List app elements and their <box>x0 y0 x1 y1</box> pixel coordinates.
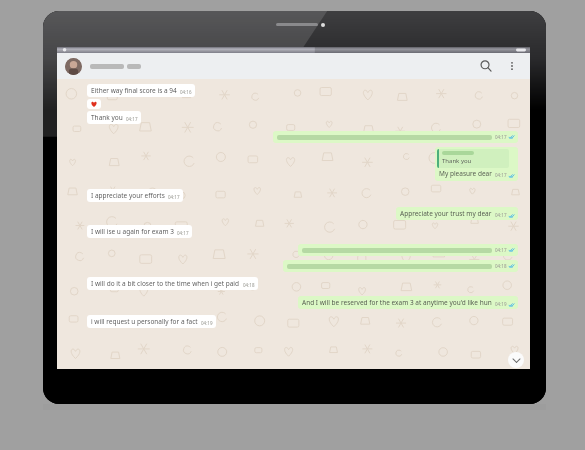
button[interactable]: 04:17 <box>298 244 518 256</box>
staticText: 04:17 <box>495 212 507 218</box>
staticText: 04:17 <box>495 172 507 178</box>
button[interactable]: Thank you <box>435 147 518 181</box>
staticText: 04:16 <box>180 89 192 95</box>
staticText: Thank you <box>442 157 472 165</box>
staticText: I will do it a bit closer to the time wh… <box>91 279 240 288</box>
button[interactable]: Scroll to bottom <box>508 352 524 368</box>
staticText: 04:19 <box>201 320 213 326</box>
button[interactable]: I will do it a bit closer to the time wh… <box>87 277 258 290</box>
staticText: And I will be reserved for the exam 3 at… <box>302 298 492 307</box>
button[interactable]: i will request u personally for a fact <box>87 315 216 328</box>
staticText: 04:17 <box>168 194 180 200</box>
staticText: 04:17 <box>495 247 507 253</box>
staticText: Appreciate your trust my dear <box>400 209 492 218</box>
staticText: Either way final score is a 94 <box>91 86 177 95</box>
button[interactable]: And I will be reserved for the exam 3 at… <box>298 296 518 309</box>
staticText: Thank you <box>91 113 123 122</box>
button[interactable]: Contact photo <box>65 58 82 75</box>
button[interactable]: Either way final score is a 94 <box>87 84 195 97</box>
button[interactable] <box>90 64 474 69</box>
staticText: 04:17 <box>495 134 507 140</box>
button[interactable]: 04:18 <box>283 260 518 272</box>
button[interactable]: I appreciate your efforts <box>87 189 183 202</box>
button[interactable]: More options <box>502 56 522 76</box>
staticText: i will request u personally for a fact <box>91 317 198 326</box>
button[interactable]: I will ise u again for exam 3 <box>87 225 192 238</box>
button[interactable]: 04:17 <box>273 131 518 143</box>
staticText: My pleasure dear <box>439 169 492 178</box>
staticText: I will ise u again for exam 3 <box>91 227 174 236</box>
button[interactable] <box>87 99 101 109</box>
staticText: 04:19 <box>495 301 507 307</box>
button[interactable]: Search <box>474 54 498 78</box>
staticText: 04:17 <box>126 116 138 122</box>
button[interactable]: Appreciate your trust my dear <box>396 207 518 220</box>
staticText: I appreciate your efforts <box>91 191 165 200</box>
staticText: 04:17 <box>177 230 189 236</box>
button[interactable]: Thank you <box>87 111 141 124</box>
staticText: 04:18 <box>495 263 507 269</box>
staticText: 04:18 <box>243 282 255 288</box>
